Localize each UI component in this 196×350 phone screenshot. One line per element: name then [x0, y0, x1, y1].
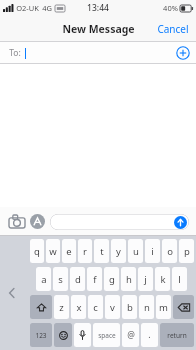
staticText: w	[49, 245, 57, 258]
button[interactable]: Send	[50, 214, 189, 230]
button[interactable]: q	[30, 239, 44, 263]
button[interactable]: i	[145, 239, 160, 263]
button[interactable]: y	[111, 239, 126, 263]
button[interactable]: r	[78, 239, 92, 263]
staticText: To:	[9, 47, 21, 59]
button[interactable]: Merge keyboard	[6, 287, 18, 299]
staticText: x	[76, 301, 82, 314]
staticText: .	[148, 329, 151, 341]
staticText: q	[34, 245, 40, 258]
staticText: return	[167, 331, 187, 340]
staticText: O2-UK	[16, 3, 39, 13]
staticText: z	[59, 301, 64, 314]
staticText: 4G	[42, 3, 52, 13]
button[interactable]: Cancel	[150, 17, 196, 41]
button[interactable]: @	[122, 323, 139, 347]
button[interactable]: o	[162, 239, 177, 263]
button[interactable]: Emoji	[54, 323, 72, 347]
button[interactable]: n	[139, 295, 154, 319]
button[interactable]: Apps	[30, 214, 45, 229]
staticText: o	[167, 245, 173, 258]
button[interactable]: To:	[0, 42, 196, 64]
staticText: l	[178, 273, 181, 286]
button[interactable]: a	[36, 267, 51, 291]
button[interactable]: l	[172, 267, 187, 291]
staticText: t	[100, 245, 104, 258]
staticText: d	[75, 273, 81, 286]
button[interactable]: .	[141, 323, 158, 347]
staticText: c	[93, 301, 98, 314]
button[interactable]: Send	[174, 216, 187, 229]
staticText: g	[109, 273, 115, 286]
button[interactable]: g	[104, 267, 119, 291]
button[interactable]: v	[105, 295, 120, 319]
button[interactable]: h	[121, 267, 136, 291]
staticText: i	[151, 245, 154, 258]
button[interactable]: c	[88, 295, 103, 319]
staticText: 13:44	[87, 2, 109, 14]
staticText: n	[144, 301, 150, 314]
staticText: p	[184, 245, 190, 258]
staticText: 123	[35, 331, 47, 340]
button[interactable]: p	[179, 239, 194, 263]
staticText: r	[83, 245, 87, 258]
staticText: space	[98, 331, 116, 340]
staticText: s	[58, 273, 63, 286]
staticText: a	[41, 273, 47, 286]
button[interactable]: e	[62, 239, 76, 263]
button[interactable]: Shift	[30, 295, 52, 319]
staticText: k	[160, 273, 166, 286]
button[interactable]: 123	[30, 323, 52, 347]
button[interactable]: f	[87, 267, 102, 291]
staticText: f	[93, 273, 97, 286]
button[interactable]: d	[70, 267, 85, 291]
button[interactable]: b	[122, 295, 137, 319]
staticText: Cancel	[157, 22, 189, 36]
button[interactable]: u	[128, 239, 143, 263]
staticText: h	[126, 273, 132, 286]
button[interactable]: m	[156, 295, 171, 319]
button[interactable]: space	[93, 323, 120, 347]
staticText: v	[110, 301, 115, 314]
button[interactable]: return	[160, 323, 194, 347]
staticText: j	[144, 273, 147, 286]
staticText: e	[66, 245, 72, 258]
staticText: b	[127, 301, 133, 314]
button[interactable]: Add contact	[176, 46, 190, 60]
button[interactable]: j	[138, 267, 153, 291]
button[interactable]: s	[53, 267, 68, 291]
staticText: m	[159, 301, 168, 314]
staticText: New Message	[62, 22, 135, 36]
button[interactable]: w	[46, 239, 60, 263]
staticText: y	[116, 245, 121, 258]
button[interactable]: t	[94, 239, 109, 263]
button[interactable]: Dictation	[74, 323, 91, 347]
button[interactable]: k	[155, 267, 170, 291]
staticText: u	[133, 245, 139, 258]
staticText: 40%	[163, 3, 178, 13]
button[interactable]: Camera	[7, 212, 26, 231]
button[interactable]: x	[71, 295, 86, 319]
button[interactable]: Backspace	[173, 295, 194, 319]
button[interactable]: z	[54, 295, 69, 319]
staticText: @	[127, 329, 135, 341]
